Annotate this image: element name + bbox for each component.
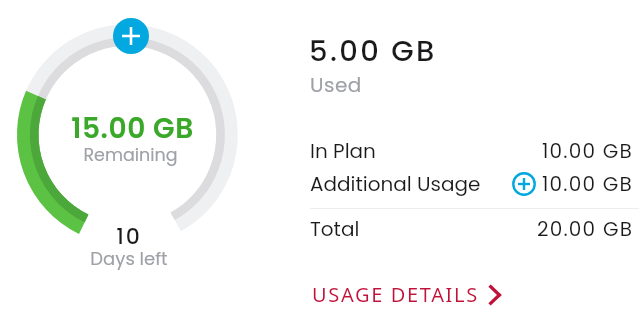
staticText: 15.00 GB (71, 109, 194, 148)
button[interactable]: USAGE DETAILS (312, 281, 501, 308)
staticText: 5.00 GB (309, 31, 437, 72)
staticText: Remaining (83, 143, 178, 168)
button[interactable]: In Plan (310, 137, 634, 165)
staticText: 10.00 GB (542, 137, 634, 165)
staticText: 10 (116, 221, 142, 252)
button[interactable]: Add data (113, 18, 149, 54)
button[interactable]: Additional Usage (310, 170, 634, 198)
staticText: Days left (90, 246, 168, 271)
staticText: 10.00 GB (542, 170, 634, 198)
staticText: Additional Usage (310, 170, 481, 198)
staticText: Total (310, 215, 360, 243)
staticText: Used (310, 71, 362, 99)
button[interactable]: Add additional usage (511, 171, 537, 197)
staticText: In Plan (310, 137, 376, 165)
staticText: USAGE DETAILS (312, 281, 479, 308)
staticText: 20.00 GB (537, 215, 634, 243)
